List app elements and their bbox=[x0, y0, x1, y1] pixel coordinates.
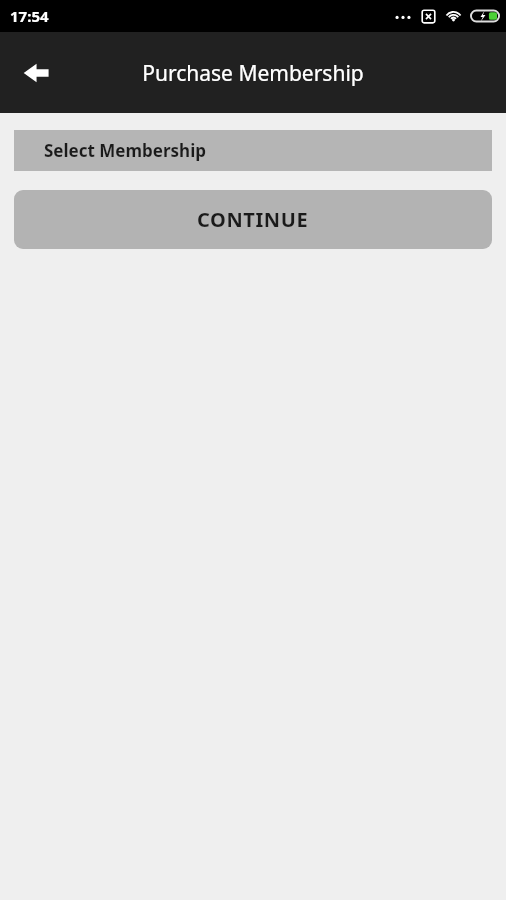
button[interactable]: Select Membership bbox=[14, 130, 492, 171]
button[interactable]: Back bbox=[12, 49, 60, 97]
staticText: Select Membership bbox=[44, 139, 206, 162]
staticText: CONTINUE bbox=[197, 206, 309, 233]
button[interactable]: CONTINUE bbox=[14, 190, 492, 249]
staticText: 17:54 bbox=[10, 6, 49, 26]
staticText: Purchase Membership bbox=[142, 59, 364, 88]
